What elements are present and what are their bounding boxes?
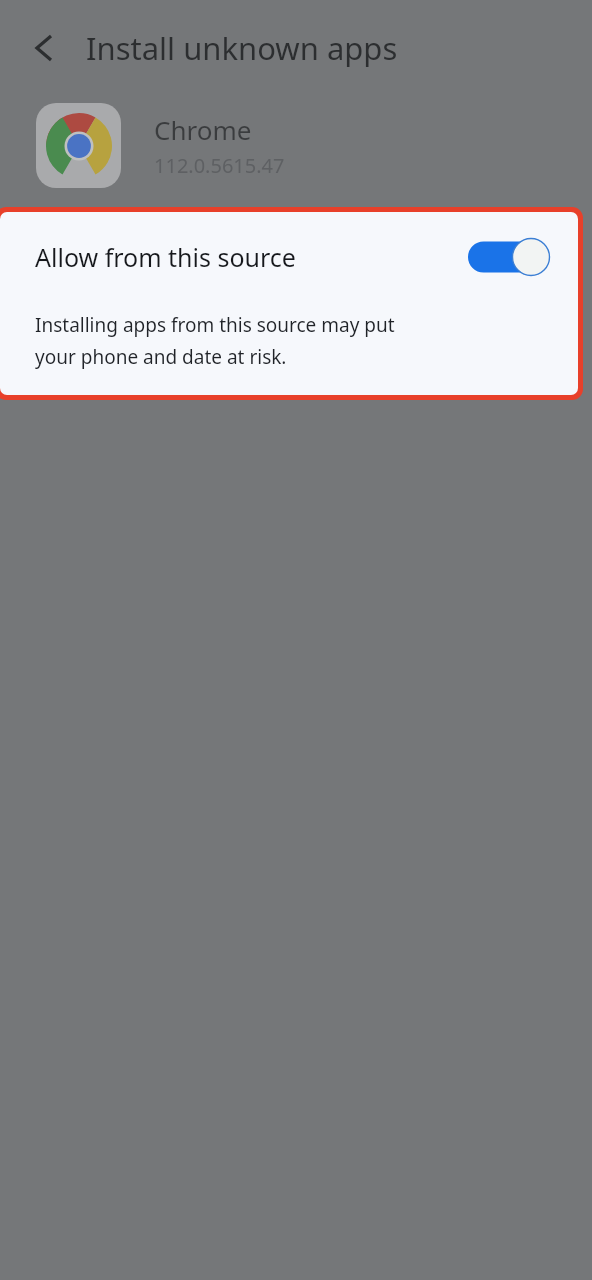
button[interactable]: Allow from this source toggle, on — [468, 236, 544, 278]
staticText: Allow from this source — [35, 240, 468, 274]
staticText: Chrome — [154, 112, 252, 147]
button[interactable]: Allow from this source — [0, 212, 578, 302]
staticText: 112.0.5615.47 — [154, 152, 285, 179]
button[interactable]: Back — [18, 21, 72, 75]
staticText: Installing apps from this source may put… — [35, 312, 423, 370]
staticText: Install unknown apps — [86, 27, 398, 69]
